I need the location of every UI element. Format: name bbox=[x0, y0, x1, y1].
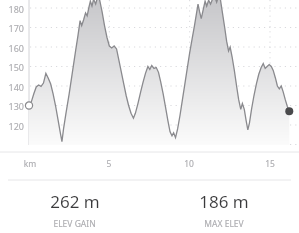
staticText: 5 bbox=[89, 158, 129, 170]
staticText: km bbox=[10, 158, 50, 170]
staticText: 15 bbox=[250, 158, 290, 170]
staticText: MAX ELEV bbox=[204, 218, 244, 230]
staticText: 170 bbox=[0, 22, 24, 34]
staticText: 150 bbox=[0, 61, 24, 73]
staticText: 140 bbox=[0, 81, 24, 93]
staticText: 130 bbox=[0, 100, 24, 112]
staticText: ELEV GAIN bbox=[53, 218, 96, 230]
button[interactable]: 262 m bbox=[0, 190, 149, 230]
staticText: 10 bbox=[169, 158, 209, 170]
staticText: 186 m bbox=[199, 190, 249, 213]
staticText: 160 bbox=[0, 42, 24, 54]
staticText: 180 bbox=[0, 3, 24, 15]
button[interactable]: 186 m bbox=[149, 190, 299, 230]
staticText: 262 m bbox=[50, 190, 100, 213]
staticText: 120 bbox=[0, 120, 24, 132]
